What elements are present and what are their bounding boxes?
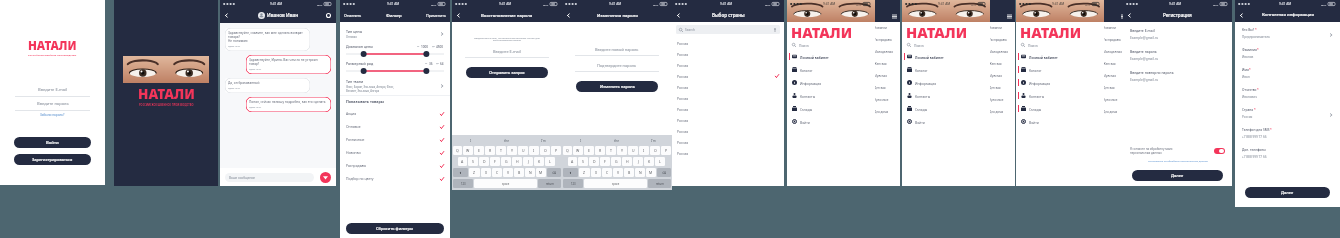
button[interactable]: Соглашение на обработку персональных дан… <box>1123 159 1232 162</box>
button[interactable]: X <box>591 168 601 177</box>
button[interactable]: O <box>540 146 550 155</box>
button[interactable] <box>346 51 444 57</box>
button[interactable]: B <box>624 168 634 177</box>
button[interactable]: Q <box>563 146 572 155</box>
button[interactable]: Кто Вы? <box>1235 26 1340 43</box>
button[interactable]: Y <box>617 146 627 155</box>
button[interactable]: I'm <box>525 135 561 144</box>
button[interactable]: Фамилия <box>1235 46 1340 63</box>
button[interactable]: Войти <box>787 115 875 128</box>
button[interactable]: Телефон для SMS <box>1235 126 1340 143</box>
button[interactable]: Чулочные <box>1101 94 1129 106</box>
button[interactable]: Распродажа <box>340 159 450 172</box>
button[interactable]: P <box>551 146 561 155</box>
button[interactable]: space <box>584 179 647 188</box>
button[interactable]: Россия <box>672 114 784 125</box>
button[interactable]: I <box>453 135 489 144</box>
button[interactable]: Применить <box>426 13 446 18</box>
button[interactable]: G <box>501 157 511 166</box>
button[interactable]: Send <box>320 172 331 183</box>
button[interactable]: Consent toggle <box>1214 148 1225 154</box>
button[interactable]: Информация <box>902 76 990 89</box>
button[interactable]: ⌫ <box>657 168 671 177</box>
button[interactable]: the <box>489 135 525 144</box>
button[interactable]: Забыли пароль? <box>15 113 90 117</box>
button[interactable]: Каталог <box>787 63 875 76</box>
button[interactable]: Тип цены <box>340 26 450 42</box>
button[interactable]: U <box>628 146 638 155</box>
button[interactable]: Женская <box>872 58 900 70</box>
button[interactable]: Далее <box>1245 187 1330 198</box>
button[interactable]: Детская <box>987 82 1015 94</box>
button[interactable]: Отправить запрос <box>466 67 548 78</box>
button[interactable]: T <box>606 146 616 155</box>
button[interactable]: Имя <box>1235 66 1340 83</box>
button[interactable]: M <box>646 168 656 177</box>
button[interactable]: Каталог <box>902 63 990 76</box>
button[interactable]: Каталог <box>1016 63 1104 76</box>
button[interactable]: Россия <box>672 147 784 158</box>
button[interactable]: ⬆ <box>563 168 578 177</box>
button[interactable]: Мужская <box>872 70 900 82</box>
button[interactable]: Чулочные <box>987 94 1015 106</box>
button[interactable]: Распродажа <box>872 34 900 46</box>
button[interactable]: Сбросить фильтры <box>346 223 444 234</box>
button[interactable]: Menu <box>1121 14 1126 19</box>
button[interactable]: space <box>474 179 537 188</box>
button[interactable]: Отменить <box>344 13 362 18</box>
button[interactable]: the <box>599 135 635 144</box>
button[interactable]: W <box>463 146 473 155</box>
button[interactable]: L <box>545 157 555 166</box>
button[interactable]: Back <box>1235 8 1248 22</box>
button[interactable]: Здравствуйте, скажите, как мне сделать в… <box>225 28 310 51</box>
button[interactable]: Молодежная <box>872 46 900 58</box>
button[interactable]: Россия <box>672 59 784 70</box>
button[interactable]: 123 <box>563 179 583 188</box>
button[interactable]: Здравствуйте, Ирина. Вас чем-то не устро… <box>246 55 331 74</box>
button[interactable]: Контакты <box>787 89 875 102</box>
button[interactable]: ⌫ <box>547 168 561 177</box>
button[interactable]: Склады <box>1016 102 1104 115</box>
button[interactable]: C <box>602 168 612 177</box>
button[interactable]: W <box>573 146 583 155</box>
button[interactable]: ⬆ <box>453 168 468 177</box>
button[interactable]: Z <box>469 168 480 177</box>
button[interactable]: Back <box>452 8 465 22</box>
button[interactable]: Back <box>562 8 575 22</box>
button[interactable]: J <box>633 157 643 166</box>
button[interactable]: Для дома <box>1101 106 1129 118</box>
button[interactable]: Детская <box>1101 82 1129 94</box>
button[interactable]: Новинки <box>340 146 450 159</box>
button[interactable]: Подбор по цвету <box>340 172 450 185</box>
button[interactable]: N <box>635 168 645 177</box>
button[interactable]: Россия <box>672 37 784 48</box>
button[interactable]: Личный кабинет <box>1016 50 1104 63</box>
button[interactable]: R <box>485 146 495 155</box>
button[interactable]: Личный кабинет <box>902 50 990 63</box>
button[interactable]: K <box>644 157 654 166</box>
button[interactable]: Понял, сейчас напишу подробно, как это с… <box>246 97 331 112</box>
button[interactable]: Back <box>1123 8 1136 22</box>
button[interactable]: Для дома <box>872 106 900 118</box>
button[interactable]: Ваше сообщение <box>225 173 314 182</box>
button[interactable]: Россия <box>672 48 784 59</box>
button[interactable]: Молодежная <box>987 46 1015 58</box>
button[interactable]: H <box>622 157 632 166</box>
button[interactable]: U <box>518 146 528 155</box>
button[interactable]: Введите E-mail <box>15 83 90 96</box>
button[interactable]: Доп. телефоны <box>1235 146 1340 163</box>
button[interactable]: S <box>578 157 588 166</box>
button[interactable]: Личный кабинет <box>787 50 875 63</box>
button[interactable]: Оптовые <box>340 120 450 133</box>
button[interactable]: Example@gmail.ru <box>1130 78 1225 82</box>
button[interactable]: V <box>613 168 623 177</box>
button[interactable]: Россия <box>672 136 784 147</box>
button[interactable]: Подтвердите пароль <box>575 60 659 71</box>
button[interactable]: Зарегистрироваться <box>14 154 91 165</box>
button[interactable]: Мужская <box>987 70 1015 82</box>
button[interactable]: F <box>490 157 500 166</box>
button[interactable]: Example@gmail.ru <box>1130 57 1225 61</box>
button[interactable]: Тип ткани <box>340 76 450 95</box>
button[interactable]: Контакты <box>1016 89 1104 102</box>
button[interactable]: E <box>474 146 484 155</box>
